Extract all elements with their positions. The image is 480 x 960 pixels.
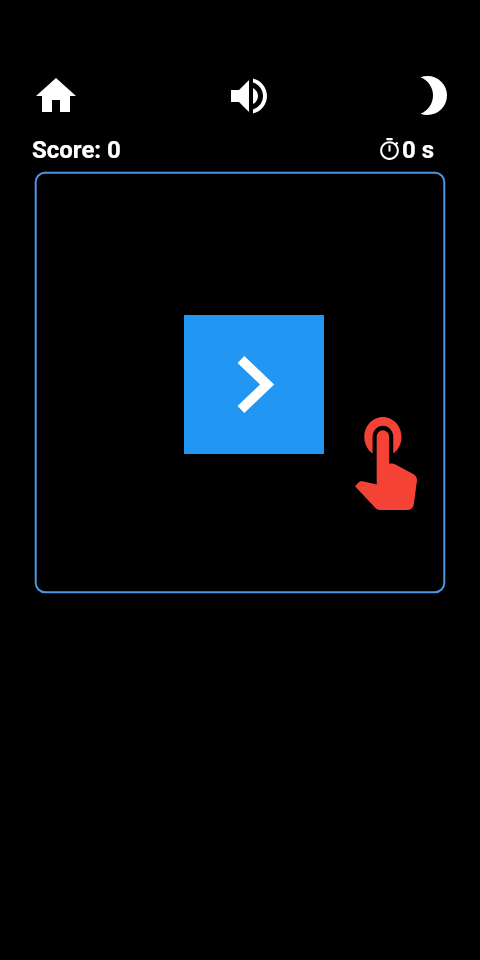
button[interactable]: Tile <box>184 315 324 454</box>
button[interactable]: Dark mode <box>410 69 458 121</box>
button[interactable]: Sound <box>222 70 276 122</box>
staticText: Score: 0 <box>32 136 121 164</box>
staticText: 0 s <box>402 136 435 164</box>
button[interactable]: Home <box>29 70 83 122</box>
